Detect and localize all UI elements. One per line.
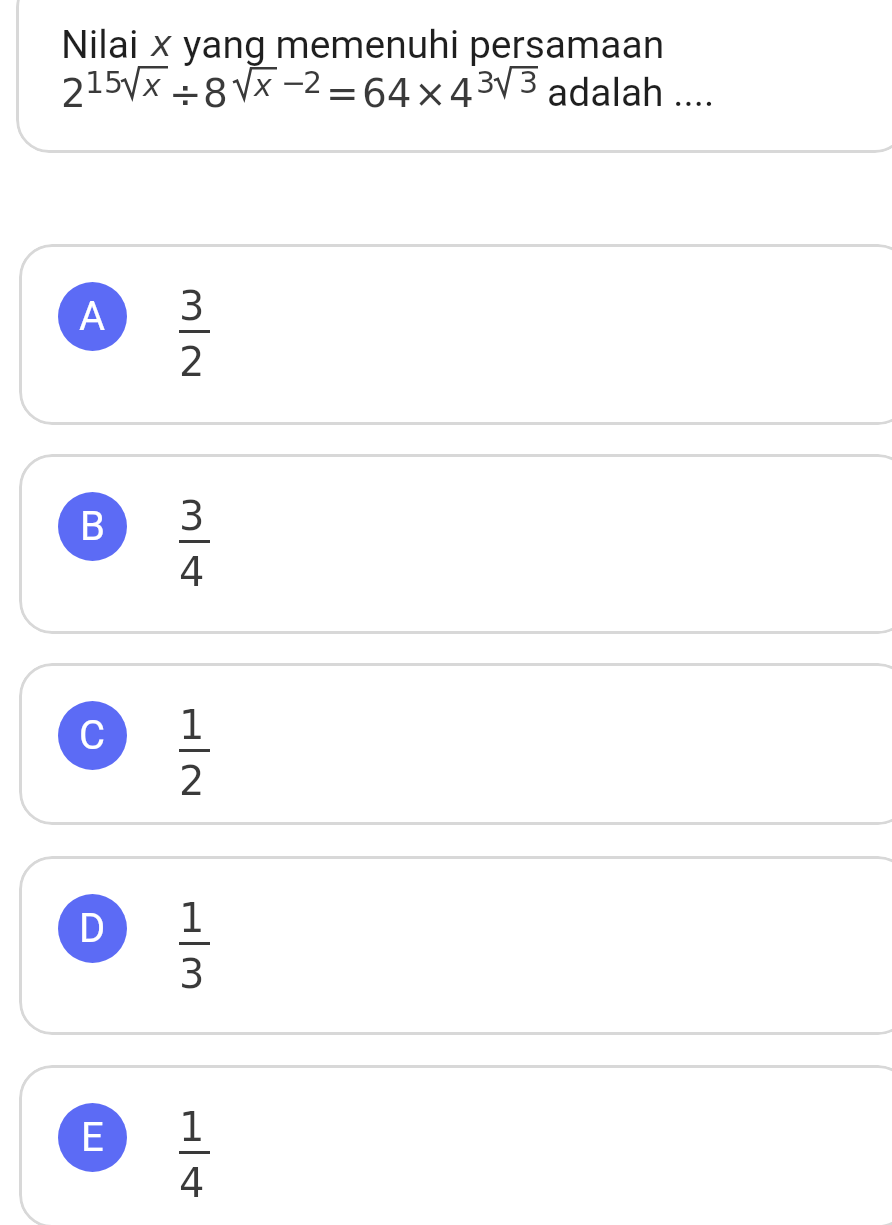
staticText: − <box>281 65 307 100</box>
staticText: 4 <box>179 1160 205 1207</box>
staticText: = <box>326 71 359 116</box>
staticText: x <box>254 68 272 103</box>
staticText: 3 <box>179 951 205 998</box>
staticText: B <box>80 503 105 550</box>
staticText: 64 <box>362 71 412 116</box>
staticText: 8 <box>203 71 228 116</box>
staticText: yang memenuhi persamaan <box>183 22 665 68</box>
staticText: 3 <box>476 65 496 100</box>
staticText: 4 <box>179 549 205 596</box>
button[interactable]: C <box>19 663 892 825</box>
staticText: 15 <box>85 65 124 100</box>
staticText: 4 <box>449 71 474 116</box>
button[interactable]: E <box>19 1065 892 1225</box>
button[interactable]: A <box>19 244 892 425</box>
staticText: Nilai <box>61 22 139 68</box>
staticText: 3 <box>179 493 205 540</box>
staticText: x <box>143 68 161 103</box>
staticText: 1 <box>179 895 205 942</box>
staticText: ÷ <box>169 71 202 116</box>
button[interactable]: D <box>19 856 892 1035</box>
staticText: 2 <box>179 758 205 805</box>
staticText: × <box>414 71 447 116</box>
staticText: 2 <box>61 71 86 116</box>
staticText: D <box>79 905 106 952</box>
staticText: 2 <box>179 339 205 386</box>
button[interactable]: B <box>19 454 892 634</box>
staticText: C <box>79 712 106 759</box>
staticText: 2 <box>303 65 323 100</box>
staticText: adalah .... <box>547 70 715 116</box>
staticText: x <box>151 24 172 65</box>
staticText: 3 <box>519 65 539 100</box>
staticText: A <box>79 293 106 340</box>
staticText: 1 <box>179 702 205 749</box>
staticText: 1 <box>179 1104 205 1151</box>
staticText: 3 <box>179 283 205 330</box>
staticText: E <box>81 1114 104 1161</box>
